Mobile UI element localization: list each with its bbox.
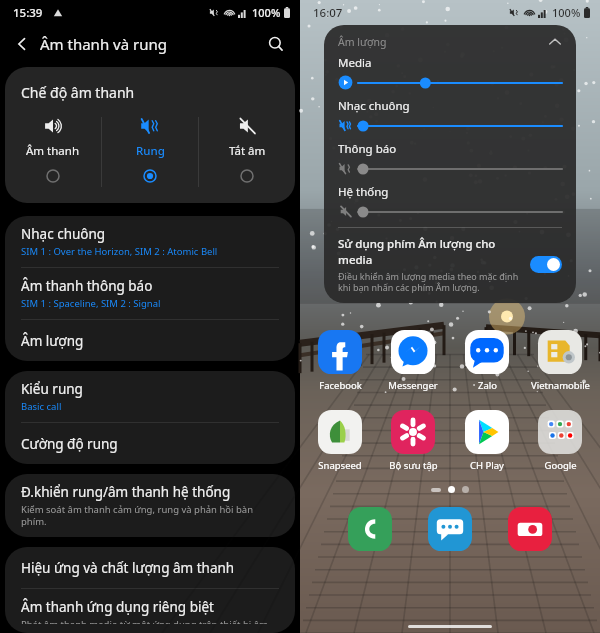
button[interactable]: Search [260, 28, 292, 60]
button[interactable]: Rung [102, 113, 198, 185]
button[interactable]: Âm thanh [5, 113, 101, 185]
staticText: Tắt âm [229, 143, 266, 159]
staticText: Vietnamobile [531, 379, 590, 392]
staticText: Facebook [319, 379, 362, 392]
button[interactable]: App [508, 507, 552, 551]
button[interactable]: Google [526, 410, 594, 472]
button[interactable]: Nhạc chuông [5, 216, 295, 267]
button[interactable]: Kiểu rung [5, 371, 295, 422]
staticText: Âm lượng [338, 35, 548, 49]
button[interactable]: CH Play [453, 410, 521, 472]
staticText: Chế độ âm thanh [21, 83, 135, 102]
button[interactable]: Âm thanh ứng dụng riêng biệt [5, 589, 295, 633]
staticText: Âm thanh và rung [40, 34, 167, 54]
staticText: CH Play [470, 459, 504, 472]
staticText: Kiểm soát âm thanh cảm ứng, rung và phản… [21, 503, 281, 528]
button[interactable]: App [348, 507, 392, 551]
staticText: Hiệu ứng và chất lượng âm thanh [21, 559, 235, 577]
staticText: Đ.khiển rung/âm thanh hệ thống [21, 483, 231, 501]
staticText: Basic call [21, 400, 62, 413]
button[interactable]: Nhạc chuông [338, 98, 562, 133]
staticText: 100% [552, 5, 581, 20]
staticText: Âm lượng [21, 332, 84, 350]
staticText: Nhạc chuông [338, 98, 410, 114]
staticText: Messenger [388, 379, 438, 392]
button[interactable]: Back [6, 28, 38, 60]
button[interactable]: Zalo [453, 330, 521, 392]
staticText: 16:07 [313, 5, 343, 21]
staticText: Kiểu rung [21, 380, 83, 398]
staticText: 15:39 [13, 5, 43, 21]
button[interactable]: Tắt âm [199, 113, 295, 185]
button[interactable]: Facebook [306, 330, 374, 392]
button[interactable]: Vietnamobile [526, 330, 594, 392]
staticText: SIM 1 : Spaceline, SIM 2 : Signal [21, 297, 161, 310]
button[interactable]: Âm lượng [338, 35, 562, 49]
button[interactable]: Bộ sưu tập [379, 410, 447, 472]
staticText: Google [544, 459, 577, 472]
button[interactable]: Media [338, 55, 562, 90]
button[interactable]: App [428, 507, 472, 551]
button[interactable]: Messenger [379, 330, 447, 392]
staticText: Phát âm thanh media từ một ứng dụng trên… [21, 618, 281, 624]
button[interactable]: Hiệu ứng và chất lượng âm thanh [5, 547, 295, 588]
staticText: Âm thanh ứng dụng riêng biệt [21, 598, 214, 616]
staticText: Sử dụng phím Âm lượng cho media [338, 236, 522, 268]
staticText: Rung [136, 143, 165, 159]
button[interactable]: Hệ thống [338, 184, 562, 219]
button[interactable]: Sử dụng phím Âm lượng cho media [338, 236, 562, 293]
staticText: Âm thanh thông báo [21, 277, 153, 295]
staticText: SIM 1 : Over the Horizon, SIM 2 : Atomic… [21, 245, 218, 258]
staticText: Zalo [478, 379, 497, 392]
other: Collapse [548, 35, 562, 49]
staticText: Thông báo [338, 141, 397, 157]
staticText: Hệ thống [338, 184, 389, 200]
button[interactable]: Snapseed [306, 410, 374, 472]
staticText: Media [338, 55, 372, 71]
staticText: Snapseed [318, 459, 362, 472]
staticText: Nhạc chuông [21, 225, 106, 243]
button[interactable]: Âm thanh thông báo [5, 268, 295, 319]
staticText: 100% [252, 5, 281, 20]
button[interactable]: Âm lượng [5, 320, 295, 361]
button[interactable]: Đ.khiển rung/âm thanh hệ thống [5, 474, 295, 537]
staticText: Âm thanh [26, 143, 80, 159]
staticText: Điều khiển âm lượng media theo mặc định … [338, 270, 522, 293]
button[interactable]: Thông báo [338, 141, 562, 176]
staticText: Cường độ rung [21, 435, 118, 453]
staticText: Bộ sưu tập [389, 459, 438, 472]
button[interactable]: Cường độ rung [5, 423, 295, 464]
